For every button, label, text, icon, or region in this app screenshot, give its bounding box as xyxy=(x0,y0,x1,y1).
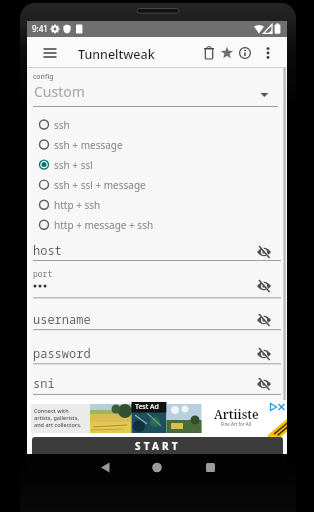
button[interactable] xyxy=(215,41,239,65)
staticText: Custom xyxy=(34,82,85,100)
staticText: Connect with artists, gallerists, and ar… xyxy=(34,407,82,428)
staticText: ssh + ssl + message xyxy=(54,178,146,192)
button[interactable] xyxy=(27,306,287,330)
staticText: Artiiste xyxy=(214,406,259,422)
staticText: http + ssh xyxy=(54,198,101,212)
staticText: ssh xyxy=(54,118,70,132)
staticText: http + message + ssh xyxy=(54,218,154,232)
button[interactable] xyxy=(27,70,287,108)
button[interactable] xyxy=(33,195,233,215)
staticText: 9:41 xyxy=(32,23,48,34)
button[interactable] xyxy=(33,115,233,135)
button[interactable] xyxy=(33,155,233,175)
staticText: Tunneltweak xyxy=(78,46,155,63)
staticText: config xyxy=(33,72,54,82)
button[interactable] xyxy=(38,41,62,65)
button[interactable] xyxy=(197,41,221,65)
button[interactable] xyxy=(257,41,279,63)
staticText: port xyxy=(33,268,53,279)
staticText: Fine Art for All xyxy=(221,421,252,427)
staticText: host xyxy=(33,242,62,258)
button[interactable] xyxy=(33,175,233,195)
button[interactable] xyxy=(145,455,169,479)
button[interactable] xyxy=(27,370,287,395)
button[interactable] xyxy=(27,340,287,364)
button[interactable] xyxy=(33,135,233,155)
staticText: Test Ad xyxy=(135,402,159,412)
button[interactable] xyxy=(33,215,233,235)
button[interactable]: Connect with artists, gallerists, and ar… xyxy=(27,400,287,437)
staticText: START xyxy=(135,439,181,453)
staticText: username xyxy=(33,311,91,327)
button[interactable] xyxy=(27,264,287,298)
button[interactable] xyxy=(233,41,257,65)
staticText: ssh + ssl xyxy=(54,158,93,172)
button[interactable]: START xyxy=(32,437,283,454)
staticText: password xyxy=(33,345,91,361)
button[interactable] xyxy=(198,455,222,479)
staticText: ssh + message xyxy=(54,138,123,152)
button[interactable] xyxy=(93,455,117,479)
button[interactable] xyxy=(27,236,287,261)
staticText: sni xyxy=(33,375,55,391)
